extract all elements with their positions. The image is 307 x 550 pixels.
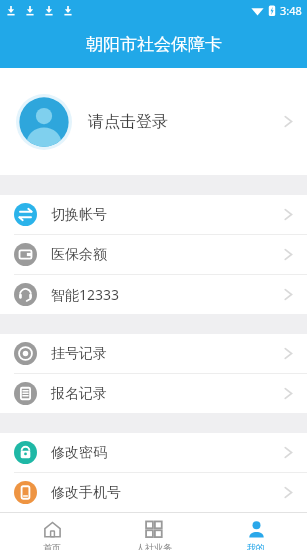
staticText: 挂号记录 — [51, 345, 107, 363]
staticText: 智能12333 — [51, 285, 120, 304]
staticText: 我的 — [247, 542, 265, 550]
staticText: 修改密码 — [51, 444, 107, 462]
staticText: 切换帐号 — [51, 206, 107, 224]
button[interactable]: 切换帐号 — [0, 195, 307, 234]
button[interactable]: Services — [103, 513, 205, 550]
staticText: 人社业务 — [136, 542, 172, 550]
button[interactable]: 修改手机号 — [0, 473, 307, 512]
button[interactable]: 医保余额 — [0, 235, 307, 274]
button[interactable]: Home — [0, 513, 103, 550]
staticText: 首页 — [43, 542, 61, 550]
staticText: 请点击登录 — [88, 112, 168, 132]
staticText: 修改手机号 — [51, 484, 121, 502]
staticText: 3:48 — [280, 3, 302, 18]
button[interactable]: Profile — [205, 513, 307, 550]
button[interactable]: 修改密码 — [0, 433, 307, 472]
button[interactable]: 请点击登录 — [0, 68, 307, 175]
staticText: 医保余额 — [51, 246, 107, 264]
button[interactable]: 挂号记录 — [0, 334, 307, 373]
staticText: 朝阳市社会保障卡 — [86, 34, 222, 55]
button[interactable]: 智能12333 — [0, 275, 307, 314]
button[interactable]: 报名记录 — [0, 374, 307, 413]
staticText: 报名记录 — [51, 385, 107, 403]
